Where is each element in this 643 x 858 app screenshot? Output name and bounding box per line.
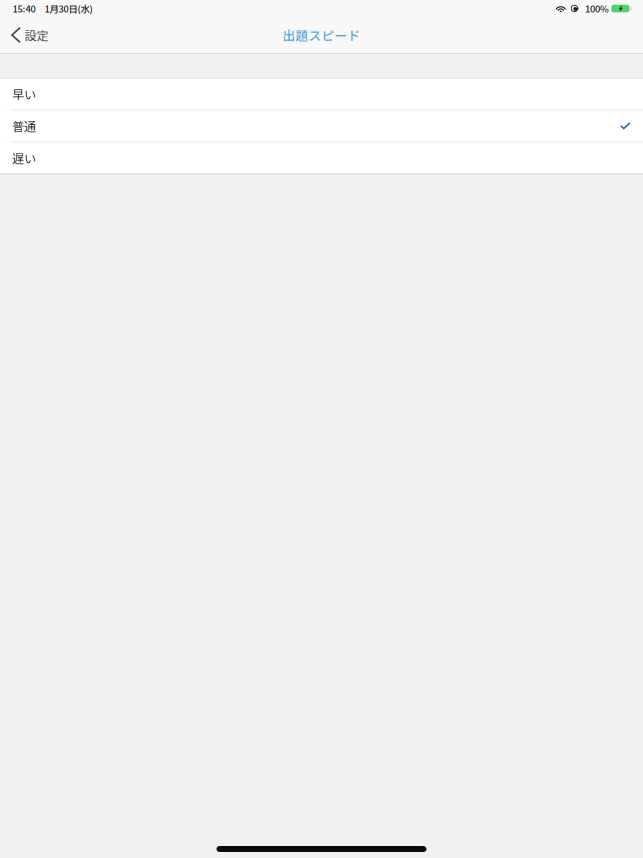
button[interactable]: 遅い bbox=[0, 143, 643, 174]
staticText: 設定 bbox=[25, 26, 49, 44]
staticText: 早い bbox=[12, 85, 36, 103]
staticText: 普通 bbox=[12, 117, 36, 135]
staticText: 出題スピード bbox=[282, 26, 360, 44]
staticText: 15:40 bbox=[12, 2, 35, 15]
staticText: 遅い bbox=[12, 149, 36, 167]
staticText: 1月30日(水) bbox=[35, 2, 92, 15]
button[interactable]: 普通 bbox=[0, 110, 643, 141]
button[interactable]: 設定 bbox=[0, 17, 59, 53]
button[interactable]: 早い bbox=[0, 78, 643, 109]
staticText: 100% bbox=[585, 2, 609, 15]
